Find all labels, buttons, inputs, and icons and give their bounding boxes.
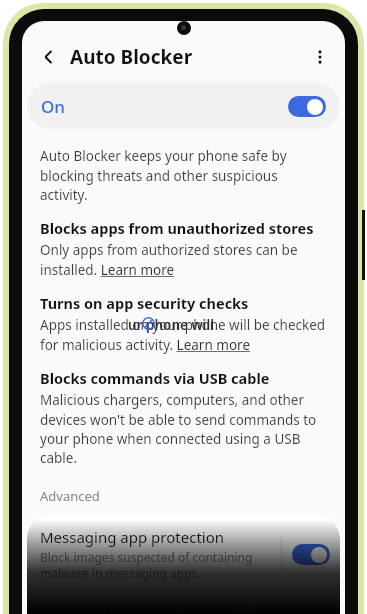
staticText: Blocks apps from unauthorized stores <box>40 218 314 238</box>
staticText: On <box>41 95 65 118</box>
button[interactable]: Only apps from authorized stores can be … <box>40 241 327 279</box>
staticText: Turns on app security checks <box>40 293 249 313</box>
button[interactable]: Apps installed on your phone will be che… <box>40 316 327 354</box>
button[interactable]: Toggle on <box>288 96 326 117</box>
staticText: Messaging app protection <box>40 527 225 547</box>
button[interactable]: Messaging app protection <box>27 515 340 591</box>
staticText: Auto Blocker keeps your phone safe by bl… <box>40 147 327 204</box>
staticText: Auto Blocker <box>70 44 193 70</box>
staticText: Block images suspected of containing mal… <box>40 549 281 581</box>
staticText: Malicious chargers, computers, and other… <box>40 391 327 467</box>
staticText: ur phone will <box>128 316 215 334</box>
button[interactable]: More options <box>303 40 337 74</box>
button[interactable]: Toggle on <box>292 544 330 565</box>
button[interactable]: On <box>27 83 340 129</box>
staticText: Blocks commands via USB cable <box>40 368 270 388</box>
button[interactable]: Back <box>32 40 66 74</box>
button[interactable]: Messaging app protection toggle <box>292 544 330 565</box>
staticText: Advanced <box>40 487 100 505</box>
staticText: Blocks software updates by USB <box>40 601 265 614</box>
